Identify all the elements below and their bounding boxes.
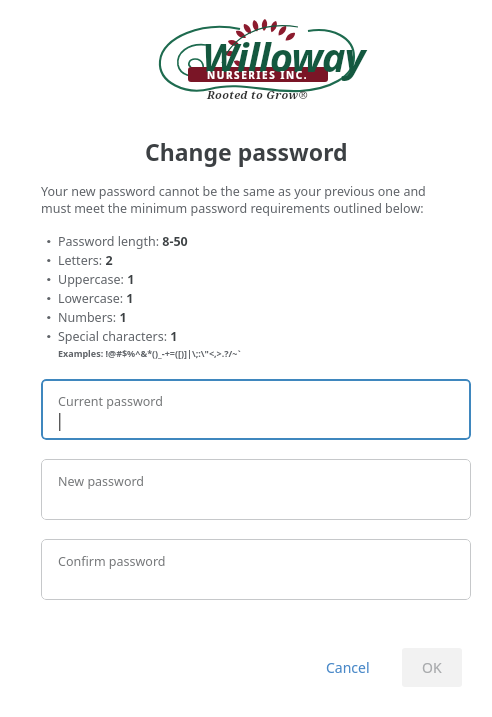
staticText: Confirm password <box>58 553 166 570</box>
staticText: Cancel <box>326 658 370 677</box>
staticText: Your new password cannot be the same as … <box>41 183 455 216</box>
staticText: Uppercase: 1 <box>58 271 135 288</box>
staticText: Letters: 2 <box>58 252 113 269</box>
staticText: New password <box>58 473 145 490</box>
button[interactable]: Confirm password <box>41 539 471 600</box>
staticText: OK <box>422 658 442 677</box>
staticText: NURSERIES INC. <box>207 68 309 82</box>
staticText: Willoway <box>202 29 365 83</box>
staticText: Rooted to Grow® <box>207 87 309 102</box>
button[interactable]: Cancel <box>312 648 384 687</box>
staticText: Special characters: 1 <box>58 328 178 345</box>
button[interactable]: Current password <box>41 379 471 440</box>
staticText: Examples: !@#$%^&*()_-+=([)]|\;:\"<,>.?/… <box>58 347 241 359</box>
staticText: Change password <box>145 136 348 167</box>
staticText: Current password <box>58 393 163 410</box>
staticText: Password length: 8-50 <box>58 233 188 250</box>
button[interactable]: OK <box>402 648 462 687</box>
staticText: Numbers: 1 <box>58 309 127 326</box>
button[interactable]: New password <box>41 459 471 520</box>
staticText: Lowercase: 1 <box>58 290 134 307</box>
